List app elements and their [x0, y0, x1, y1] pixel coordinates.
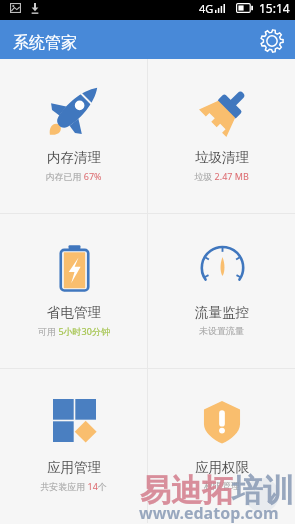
button[interactable]: 应用管理 — [0, 369, 147, 523]
staticText: 垃圾 2.47 MB — [194, 170, 249, 182]
staticText: 内存已用 67% — [45, 170, 102, 182]
staticText: 易迪拓 — [140, 471, 233, 510]
staticText: 未设置流量 — [199, 325, 244, 336]
button[interactable]: 流量监控 — [148, 214, 295, 368]
staticText: 共安装应用 14个 — [40, 480, 107, 492]
staticText: www.edatop.com — [139, 502, 279, 524]
staticText: 4G — [199, 1, 214, 16]
staticText: 系统管家 — [13, 33, 77, 53]
button[interactable]: 内存清理 — [0, 59, 147, 213]
staticText: 内存清理 — [47, 149, 101, 166]
staticText: 培训 — [232, 471, 294, 510]
button[interactable]: 应用权限 — [148, 369, 295, 523]
staticText: 垃圾清理 — [195, 149, 249, 166]
button[interactable]: 垃圾清理 — [148, 59, 295, 213]
staticText: 应用权限 — [195, 459, 249, 476]
staticText: 流量监控 — [195, 304, 249, 321]
button[interactable]: 省电管理 — [0, 214, 147, 368]
staticText: 省电管理 — [47, 304, 101, 321]
staticText: 应用管理 — [47, 459, 101, 476]
staticText: 权限管理 — [204, 480, 240, 491]
staticText: 15:14 — [259, 0, 290, 16]
staticText: 可用 5小时30分钟 — [38, 325, 110, 337]
button[interactable]: Settings — [256, 25, 288, 57]
